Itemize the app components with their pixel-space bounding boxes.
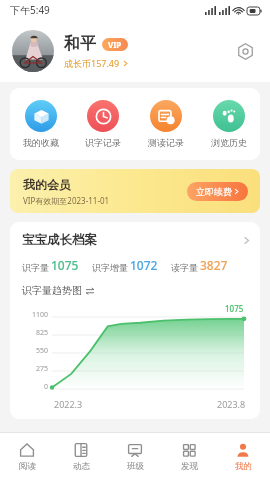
staticText: 发现	[181, 461, 198, 472]
staticText: 宝宝成长档案	[22, 232, 97, 248]
button[interactable]: 浏览历史	[197, 98, 260, 150]
staticText: 1075	[225, 303, 244, 314]
staticText: 和平	[64, 34, 96, 54]
staticText: 测读记录	[148, 137, 184, 148]
staticText: 1075	[51, 257, 79, 273]
staticText: 825	[36, 328, 49, 338]
staticText: 成长币157.49	[64, 57, 120, 69]
button[interactable]: 测读记录	[134, 98, 197, 150]
staticText: 1100	[32, 310, 49, 320]
staticText: 我的收藏	[23, 137, 59, 148]
staticText: 读字量	[171, 262, 198, 273]
staticText: 下午5:49	[10, 3, 50, 17]
button[interactable]: 宝宝成长档案	[22, 232, 250, 248]
staticText: 动态	[73, 461, 90, 472]
staticText: 立即续费	[196, 186, 232, 197]
button[interactable]: 成长币157.49	[64, 57, 128, 69]
staticText: 275	[36, 364, 49, 374]
button[interactable]: Settings	[232, 38, 258, 64]
staticText: 阅读	[19, 461, 36, 472]
staticText: 550	[36, 346, 49, 356]
staticText: 1072	[130, 257, 158, 273]
button[interactable]: 识字记录	[72, 98, 134, 150]
staticText: 2023.8	[217, 398, 246, 410]
staticText: 2022.3	[54, 398, 83, 410]
staticText: 浏览历史	[211, 137, 247, 148]
button[interactable]: 动态	[54, 433, 108, 480]
button[interactable]: Avatar	[12, 30, 54, 72]
button[interactable]: 我的会员	[10, 169, 260, 213]
staticText: 识字量趋势图	[22, 284, 82, 297]
staticText: 我的	[235, 461, 252, 472]
staticText: 识字量	[22, 262, 49, 273]
staticText: 我的会员	[23, 177, 71, 192]
staticText: 0	[44, 382, 49, 392]
staticText: VIP	[108, 39, 122, 50]
button[interactable]: 我的	[216, 433, 270, 480]
staticText: 识字记录	[85, 137, 121, 148]
button[interactable]: 我的收藏	[10, 98, 72, 150]
staticText: 识字增量	[92, 262, 128, 273]
staticText: 班级	[127, 461, 144, 472]
button[interactable]: 班级	[108, 433, 162, 480]
button[interactable]: VIP	[102, 38, 128, 51]
button[interactable]: 阅读	[0, 433, 54, 480]
staticText: VIP有效期至2023-11-01	[23, 195, 110, 206]
button[interactable]: 发现	[162, 433, 216, 480]
staticText: 3827	[200, 257, 228, 273]
button[interactable]: 立即续费	[187, 182, 248, 201]
button[interactable]: 识字量趋势图	[22, 284, 94, 297]
